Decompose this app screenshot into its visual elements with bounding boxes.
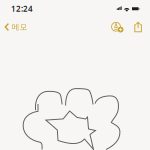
button[interactable]: 메모 bbox=[0, 19, 32, 35]
button[interactable]: Share bbox=[132, 20, 144, 34]
staticText: 메모 bbox=[11, 22, 27, 32]
button[interactable]: Markup bbox=[110, 19, 125, 35]
staticText: 12:24 bbox=[11, 3, 33, 14]
